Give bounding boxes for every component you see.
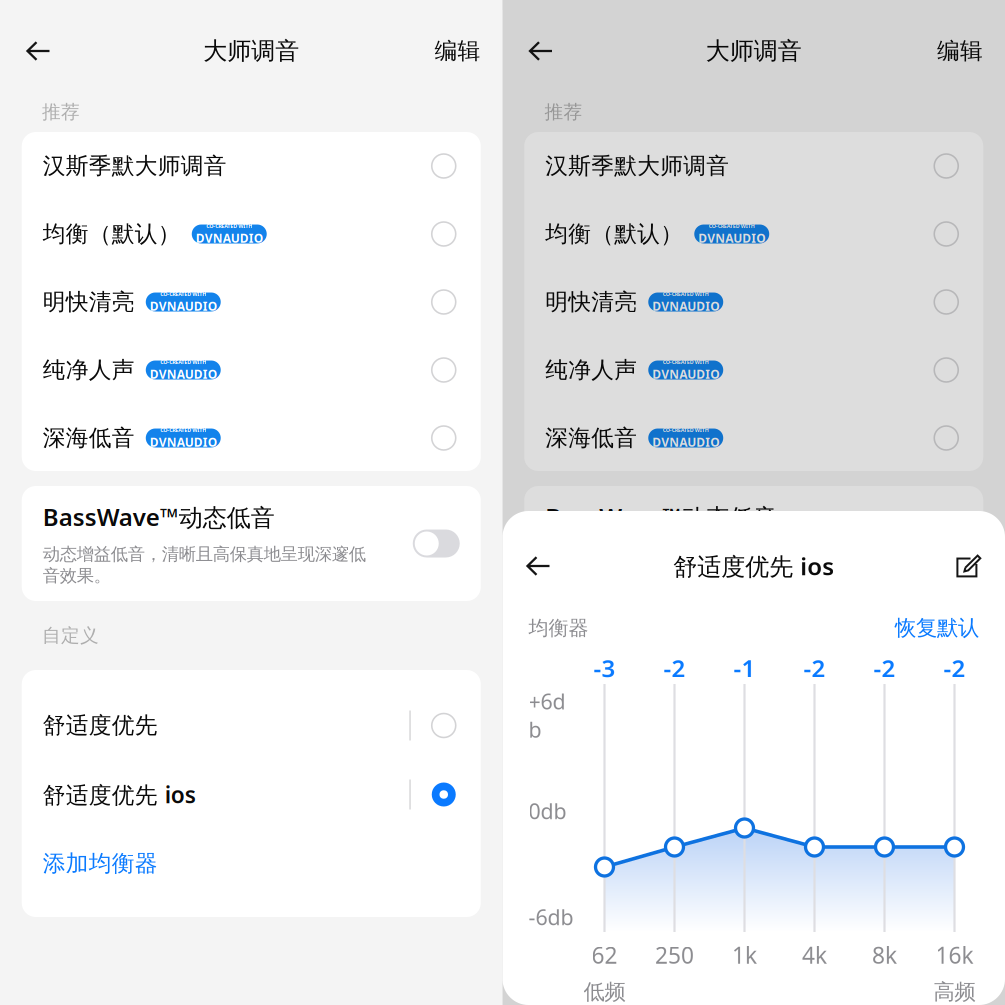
- staticText: CO-CREATED WITH: [160, 290, 206, 298]
- staticText: 自定义: [544, 624, 601, 647]
- staticText: 4k: [802, 940, 827, 970]
- staticText: DVNAUDIO: [698, 230, 765, 246]
- staticText: CO-CREATED WITH: [160, 426, 206, 434]
- button[interactable]: 深海低音: [22, 404, 481, 472]
- button[interactable]: 编辑: [410, 25, 480, 77]
- staticText: 1k: [732, 940, 757, 970]
- staticText: CO-CREATED WITH: [160, 358, 206, 366]
- staticText: 动态增益低音，清晰且高保真地呈现深邃低音效果。: [43, 544, 366, 586]
- button[interactable]: 恢复默认: [895, 615, 979, 641]
- staticText: CO-CREATED WITH: [663, 358, 709, 366]
- staticText: 推荐: [544, 100, 582, 123]
- button[interactable]: 舒适度优先: [524, 691, 983, 760]
- staticText: +6d: [528, 687, 565, 715]
- button[interactable]: 舒适度优先: [22, 691, 481, 760]
- staticText: -2: [943, 652, 965, 684]
- button[interactable]: 纯净人声: [22, 336, 481, 404]
- staticText: b: [528, 715, 541, 744]
- staticText: BassWave™动态低音: [545, 501, 777, 533]
- button[interactable]: Back: [528, 25, 580, 77]
- button[interactable]: Back: [512, 540, 564, 592]
- staticText: 明快清亮: [43, 288, 135, 316]
- staticText: 8k: [872, 940, 897, 970]
- staticText: 深海低音: [43, 424, 135, 452]
- staticText: 纯净人声: [545, 356, 637, 384]
- button[interactable]: 汉斯季默大师调音: [524, 132, 983, 200]
- staticText: 62: [591, 940, 617, 970]
- staticText: 均衡（默认）: [43, 220, 181, 248]
- staticText: 编辑: [937, 37, 983, 65]
- button[interactable]: 均衡（默认）: [524, 200, 983, 268]
- staticText: 编辑: [434, 37, 480, 65]
- button[interactable]: 深海低音: [524, 404, 983, 472]
- staticText: 推荐: [42, 100, 80, 123]
- button[interactable]: 舒适度优先 ios: [22, 760, 481, 829]
- staticText: 大师调音: [706, 36, 802, 66]
- staticText: DVNAUDIO: [652, 298, 719, 314]
- staticText: DVNAUDIO: [150, 434, 217, 450]
- staticText: 添加均衡器: [43, 850, 158, 877]
- staticText: 16k: [935, 940, 973, 970]
- staticText: 大师调音: [203, 36, 299, 66]
- staticText: 自定义: [42, 624, 99, 647]
- button[interactable]: Edit: [943, 540, 995, 592]
- button[interactable]: 编辑: [913, 25, 983, 77]
- staticText: -1: [733, 652, 755, 684]
- staticText: 深海低音: [545, 424, 637, 452]
- staticText: 低频: [583, 979, 625, 1005]
- staticText: -2: [663, 652, 685, 684]
- staticText: -6db: [528, 903, 573, 931]
- staticText: DVNAUDIO: [652, 434, 719, 450]
- staticText: 恢复默认: [895, 615, 979, 641]
- staticText: CO-CREATED WITH: [663, 426, 709, 434]
- staticText: 舒适度优先: [43, 712, 158, 739]
- staticText: 高频: [933, 979, 975, 1005]
- staticText: 汉斯季默大师调音: [545, 152, 729, 180]
- staticText: 均衡器: [528, 616, 588, 640]
- staticText: CO-CREATED WITH: [709, 222, 755, 230]
- staticText: DVNAUDIO: [196, 230, 263, 246]
- staticText: 均衡（默认）: [545, 220, 683, 248]
- button[interactable]: 均衡（默认）: [22, 200, 481, 268]
- staticText: 明快清亮: [545, 288, 637, 316]
- staticText: DVNAUDIO: [150, 366, 217, 382]
- staticText: 0db: [528, 797, 566, 825]
- staticText: 动态增益低音，清晰且高保真地呈现深邃低音效果。: [545, 544, 868, 586]
- staticText: 250: [655, 940, 694, 970]
- button[interactable]: 添加均衡器: [22, 829, 481, 898]
- staticText: 舒适度优先 ios: [545, 779, 698, 809]
- button[interactable]: Back: [26, 25, 78, 77]
- staticText: BassWave™动态低音: [43, 501, 275, 533]
- staticText: 舒适度优先 ios: [43, 779, 196, 809]
- staticText: -2: [873, 652, 895, 684]
- button[interactable]: 汉斯季默大师调音: [22, 132, 481, 200]
- staticText: 舒适度优先 ios: [673, 550, 834, 582]
- staticText: 纯净人声: [43, 356, 135, 384]
- staticText: 汉斯季默大师调音: [43, 152, 227, 180]
- staticText: 舒适度优先: [545, 712, 660, 739]
- staticText: -2: [803, 652, 825, 684]
- staticText: CO-CREATED WITH: [663, 290, 709, 298]
- staticText: CO-CREATED WITH: [206, 222, 252, 230]
- staticText: DVNAUDIO: [652, 366, 719, 382]
- button[interactable]: 舒适度优先 ios: [524, 760, 983, 829]
- staticText: DVNAUDIO: [150, 298, 217, 314]
- staticText: 添加均衡器: [545, 850, 660, 877]
- staticText: -3: [593, 652, 615, 684]
- button[interactable]: 明快清亮: [22, 268, 481, 336]
- button[interactable]: 明快清亮: [524, 268, 983, 336]
- button[interactable]: 纯净人声: [524, 336, 983, 404]
- button[interactable]: 添加均衡器: [524, 829, 983, 898]
